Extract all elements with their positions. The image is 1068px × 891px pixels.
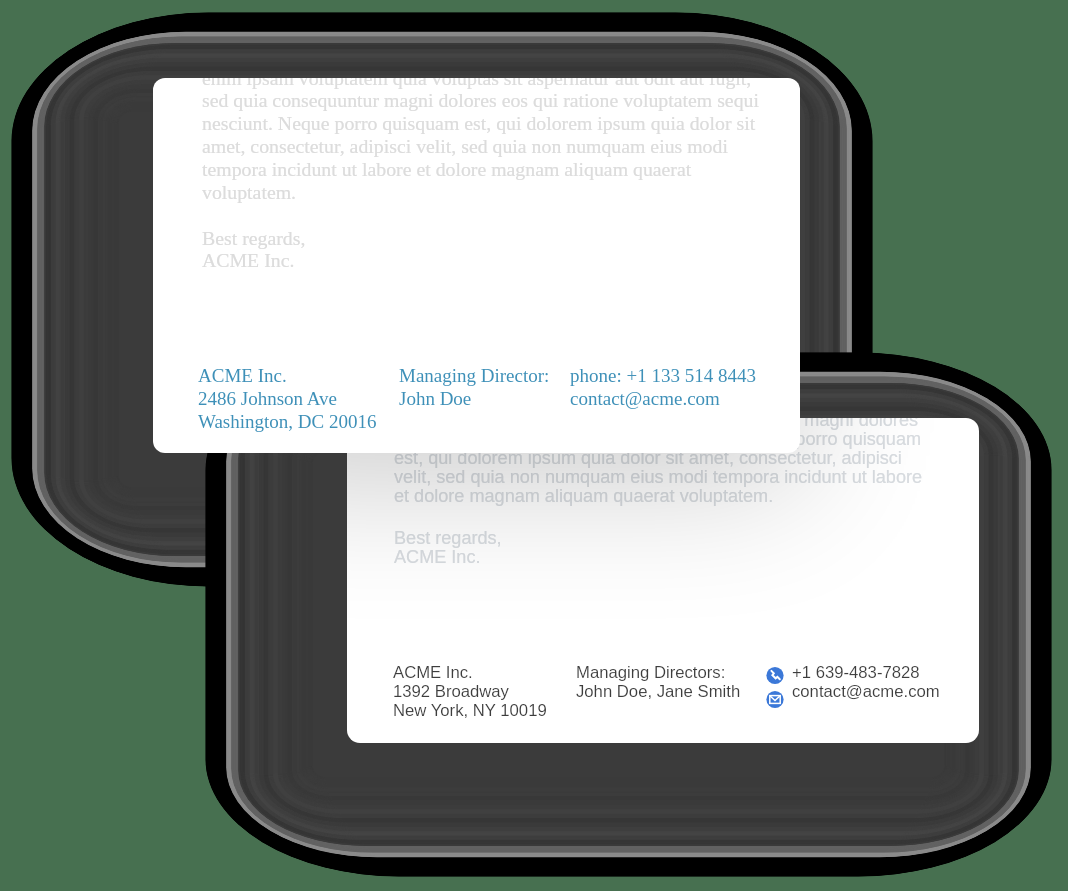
staticText: Best regards, ACME Inc. [202,227,306,271]
staticText: vel illum qui dolorem eum fugiat quo vol… [394,418,923,506]
staticText: Managing Directors: John Doe, Jane Smith [576,663,741,701]
staticText: enim ipsam voluptatem quia voluptas sit … [202,78,759,203]
staticText: +1 639-483-7828 contact@acme.com [792,663,940,701]
staticText: Managing Director: John Doe [399,365,550,409]
staticText: phone: +1 133 514 8443 contact@acme.com [570,365,756,409]
staticText: ACME Inc. 2486 Johnson Ave Washington, D… [198,365,377,432]
staticText: Best regards, ACME Inc. [394,528,502,567]
staticText: ACME Inc. 1392 Broadway New York, NY 100… [393,663,547,720]
